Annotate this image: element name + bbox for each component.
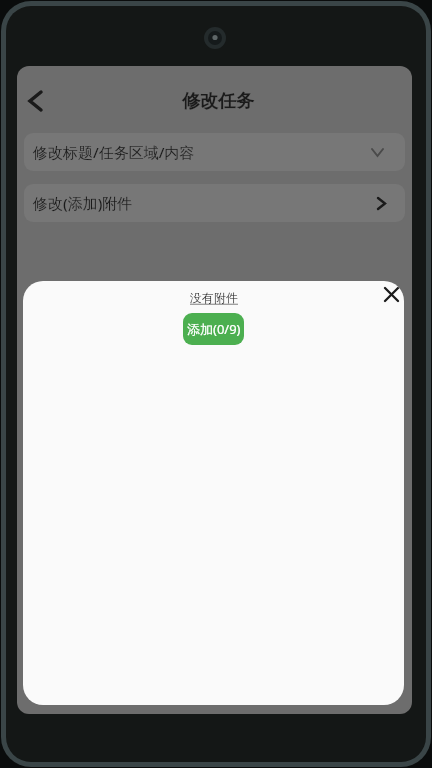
- button[interactable]: 修改标题/任务区域/内容: [24, 133, 405, 171]
- button[interactable]: 添加(0/9): [183, 313, 244, 345]
- button[interactable]: [378, 281, 404, 307]
- button[interactable]: 修改(添加)附件: [24, 184, 405, 222]
- staticText: 添加(0/9): [187, 320, 241, 338]
- staticText: 修改标题/任务区域/内容: [33, 142, 195, 162]
- staticText: 修改任务: [182, 90, 254, 113]
- staticText: 修改(添加)附件: [33, 193, 133, 213]
- staticText: 没有附件: [190, 290, 238, 305]
- button[interactable]: [23, 89, 47, 113]
